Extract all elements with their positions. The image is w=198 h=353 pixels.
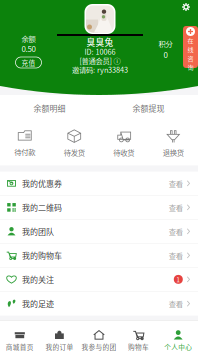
button[interactable]: 商城首页 (0, 330, 40, 352)
button[interactable]: 我的团队 (0, 220, 198, 244)
staticText: 退换货 (163, 147, 184, 158)
button[interactable]: 在线咨询 (183, 26, 198, 68)
staticText: 充值 (21, 58, 35, 67)
staticText: 查看 (169, 250, 183, 261)
staticText: 我的购物车 (22, 250, 62, 261)
button[interactable]: 余额提现 (99, 100, 198, 116)
staticText: 待付款 (14, 146, 35, 157)
button[interactable]: 个人中心 (158, 330, 198, 352)
staticText: 查看 (169, 226, 183, 237)
button[interactable]: 我参与的团 (79, 330, 119, 352)
button[interactable]: 退换货 (148, 129, 198, 158)
button[interactable]: 我的优惠券 (0, 172, 198, 196)
staticText: 积分 (158, 38, 172, 49)
staticText: 邀请码: ryn33843 (72, 64, 128, 75)
button[interactable]: 余额明细 (0, 100, 99, 116)
staticText: 我的优惠券 (22, 178, 62, 189)
staticText: 在 线 咨 询 (187, 36, 193, 71)
staticText: 余额 (21, 33, 35, 44)
staticText: 0.50 (21, 43, 35, 54)
staticText: 0 (163, 49, 167, 60)
staticText: 我的二维码 (22, 202, 62, 213)
button[interactable]: 待发货 (49, 129, 99, 158)
staticText: 查看 (169, 202, 183, 213)
staticText: 查看 (169, 178, 183, 189)
button[interactable]: 充值 (15, 57, 41, 68)
button[interactable]: 我的购物车 (0, 244, 198, 268)
staticText: 余额明细 (33, 102, 65, 114)
button[interactable]: 购物车 (119, 330, 158, 352)
button[interactable]: 我的二维码 (0, 196, 198, 220)
staticText: 查看 (169, 298, 183, 309)
button[interactable]: 我的订单 (40, 330, 79, 352)
staticText: 我的关注 (22, 274, 54, 285)
button[interactable]: 我的足迹 (0, 292, 198, 316)
staticText: 个人中心 (164, 342, 192, 352)
staticText: 购物车 (128, 342, 149, 352)
staticText: 我的团队 (22, 226, 54, 237)
staticText: ID: 10066 (84, 46, 115, 57)
staticText: 1 (176, 274, 180, 284)
staticText: 商城首页 (6, 342, 34, 352)
button[interactable]: 待收货 (99, 129, 148, 158)
button[interactable]: 待付款 (0, 129, 49, 157)
staticText: [普通会员] ⓘ (79, 55, 120, 66)
staticText: 余额提现 (132, 102, 164, 114)
staticText: 待发货 (64, 147, 85, 158)
staticText: 我的订单 (45, 342, 73, 352)
staticText: 待收货 (113, 147, 134, 158)
button[interactable]: 设置 (179, 0, 193, 14)
staticText: 我的足迹 (22, 298, 54, 309)
staticText: 臭臭兔 (86, 36, 113, 48)
button[interactable]: 我的关注 (0, 268, 198, 292)
staticText: 我参与的团 (81, 342, 116, 352)
